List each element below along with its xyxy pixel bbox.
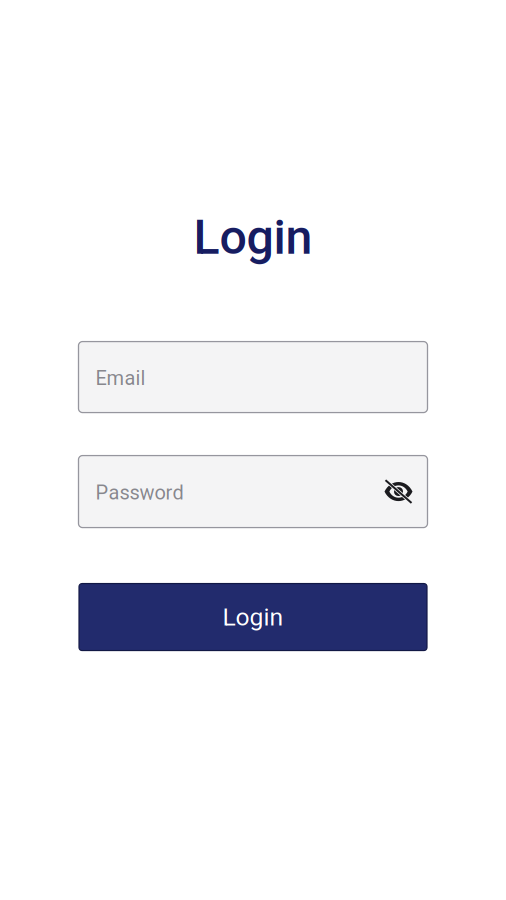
button[interactable]: Login [79, 584, 427, 651]
staticText: Password [95, 481, 183, 504]
staticText: Email [95, 366, 145, 390]
staticText: Login [193, 209, 312, 266]
button[interactable]: Password [78, 456, 427, 528]
staticText: Login [222, 603, 283, 631]
button[interactable]: Show password [384, 475, 412, 509]
button[interactable]: Email [78, 342, 427, 413]
